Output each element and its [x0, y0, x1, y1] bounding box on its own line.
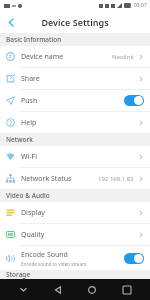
staticText: Network Status	[21, 174, 72, 184]
staticText: 192.168.1.82	[98, 175, 134, 183]
button[interactable]: Toggle	[124, 253, 144, 264]
staticText: Network	[6, 135, 33, 144]
staticText: 03:07	[134, 2, 147, 9]
button[interactable]: Wi-Fi	[0, 146, 150, 167]
staticText: Basic Information	[6, 35, 62, 44]
staticText: Display	[21, 208, 45, 218]
button[interactable]: Home	[81, 279, 103, 300]
button[interactable]: Device name	[0, 46, 150, 67]
staticText: Neolink	[112, 53, 134, 61]
button[interactable]: Display	[0, 202, 150, 223]
button[interactable]: Recents	[116, 279, 138, 300]
staticText: Encode Sound	[21, 250, 68, 260]
button[interactable]: Share	[0, 68, 150, 89]
staticText: Quality	[21, 230, 45, 240]
button[interactable]: Back	[0, 11, 22, 33]
staticText: Storage	[6, 270, 31, 279]
staticText: Encode sound to video stream.	[21, 261, 88, 267]
staticText: Share	[21, 74, 40, 84]
staticText: Device name	[21, 52, 64, 62]
button[interactable]: Push	[0, 90, 150, 111]
button[interactable]: Back	[47, 279, 69, 300]
button[interactable]: Toggle	[124, 95, 144, 106]
staticText: Device Settings	[41, 16, 109, 28]
staticText: Push	[21, 96, 38, 106]
button[interactable]: Quality	[0, 224, 150, 245]
staticText: Video & Audio	[6, 191, 50, 200]
button[interactable]: Network Status	[0, 168, 150, 189]
staticText: Wi-Fi	[21, 152, 38, 162]
button[interactable]: Hide keyboard	[12, 279, 34, 300]
staticText: Help	[21, 118, 37, 128]
button[interactable]: Encode Sound	[0, 246, 150, 270]
button[interactable]: Help	[0, 112, 150, 133]
